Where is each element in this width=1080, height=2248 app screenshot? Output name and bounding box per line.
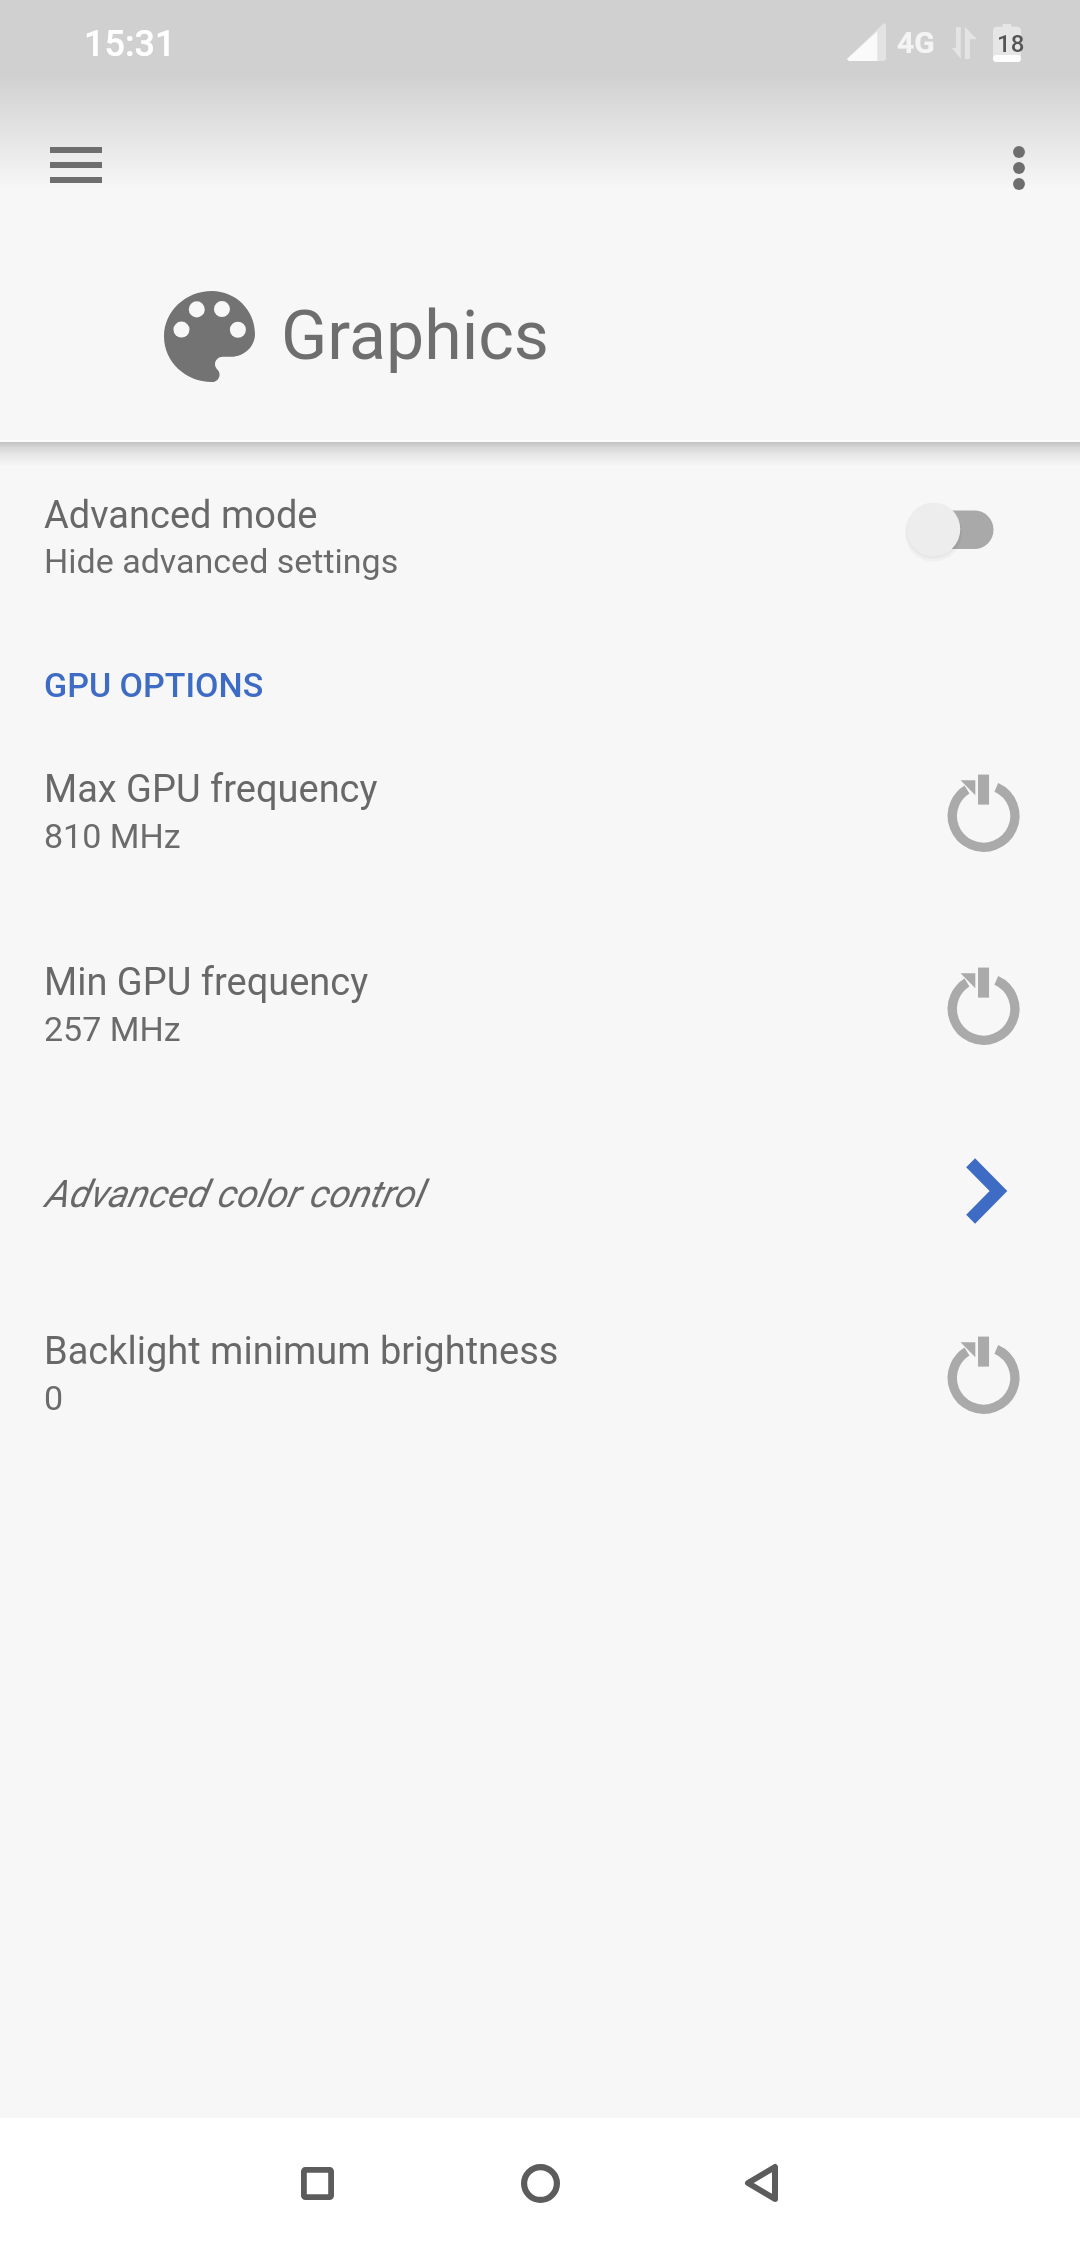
staticText: 257 MHz — [44, 1009, 181, 1049]
staticText: Advanced color control — [44, 1172, 423, 1217]
staticText: Advanced mode — [44, 493, 318, 538]
staticText: 15:31 — [84, 23, 176, 65]
button[interactable]: Advanced mode toggle — [896, 499, 1006, 565]
staticText: GPU OPTIONS — [44, 665, 264, 705]
staticText: Hide advanced settings — [44, 541, 399, 581]
button[interactable]: Max GPU frequency — [0, 761, 1080, 879]
button[interactable]: Advanced mode — [0, 470, 1080, 594]
staticText: 0 — [44, 1378, 64, 1418]
staticText: Graphics — [281, 296, 549, 376]
button[interactable]: Recent apps — [262, 2128, 372, 2238]
button[interactable]: Open navigation drawer — [24, 117, 128, 213]
staticText: 4G — [897, 25, 935, 60]
button[interactable]: Min GPU frequency — [0, 954, 1080, 1072]
staticText: 18 — [997, 30, 1025, 58]
button[interactable]: Backlight minimum brightness — [0, 1323, 1080, 1441]
staticText: Max GPU frequency — [44, 767, 378, 812]
button[interactable]: More options — [971, 120, 1067, 216]
staticText: Min GPU frequency — [44, 960, 369, 1005]
button[interactable]: Advanced color control — [0, 1148, 1080, 1266]
staticText: Backlight minimum brightness — [44, 1329, 559, 1374]
button[interactable]: Back — [706, 2128, 816, 2238]
button[interactable]: Home — [485, 2128, 595, 2238]
staticText: 810 MHz — [44, 816, 181, 856]
